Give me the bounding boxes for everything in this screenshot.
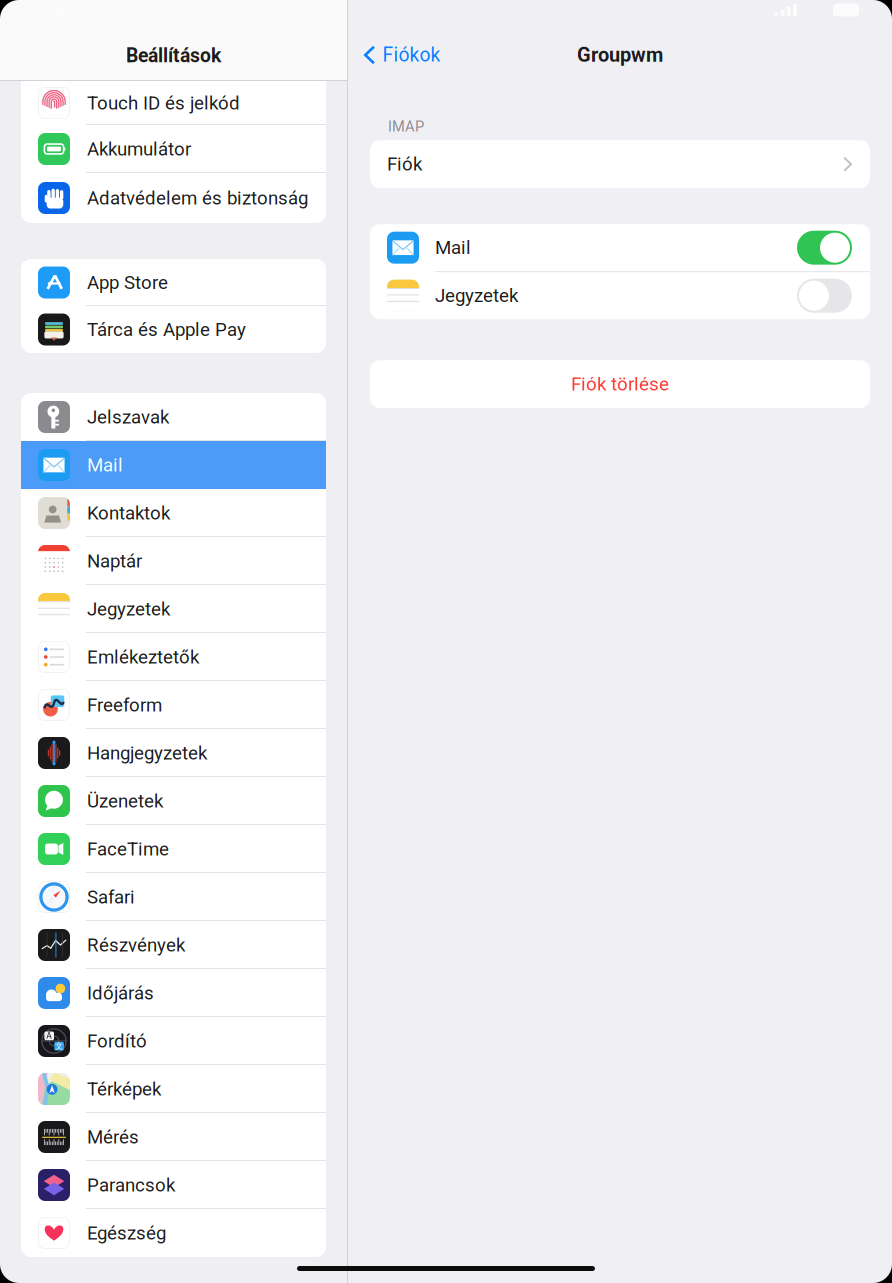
staticText: Jegyzetek — [435, 285, 518, 307]
button[interactable]: Mail — [21, 441, 326, 489]
staticText: Részvények — [87, 934, 185, 956]
staticText: Groupwm — [577, 43, 663, 67]
button[interactable]: Fiók törlése — [370, 360, 870, 408]
staticText: Térképek — [87, 1078, 161, 1100]
staticText: Mail — [435, 237, 471, 259]
button[interactable]: Részvények — [21, 921, 326, 969]
button[interactable]: Mérés — [21, 1113, 326, 1161]
button[interactable]: Parancsok — [21, 1161, 326, 1209]
button[interactable]: Jegyzetek engedélyezése — [797, 279, 852, 313]
button[interactable]: A — [21, 1017, 326, 1065]
button[interactable]: Touch ID és jelkód — [21, 81, 326, 125]
staticText: Adatvédelem és biztonság — [87, 187, 308, 209]
button[interactable]: Egészség — [21, 1209, 326, 1257]
staticText: Emlékeztetők — [87, 646, 199, 668]
button[interactable]: Üzenetek — [21, 777, 326, 825]
staticText: Kontaktok — [87, 502, 170, 524]
button[interactable]: Adatvédelem és biztonság — [21, 173, 326, 223]
staticText: IMAP — [388, 118, 424, 135]
staticText: Mail — [87, 454, 123, 476]
staticText: Időjárás — [87, 982, 154, 1004]
staticText: Akkumulátor — [87, 138, 191, 160]
staticText: Tárca és Apple Pay — [87, 319, 246, 340]
button[interactable]: Fiókok — [348, 34, 440, 76]
button[interactable]: Hangjegyzetek — [21, 729, 326, 777]
staticText: Beállítások — [126, 44, 221, 67]
staticText: Egészség — [87, 1222, 166, 1244]
button[interactable]: Emlékeztetők — [21, 633, 326, 681]
staticText: Freeform — [87, 694, 162, 716]
staticText: Parancsok — [87, 1174, 175, 1196]
button[interactable]: App Store — [21, 259, 326, 306]
button[interactable]: Naptár — [21, 537, 326, 585]
button[interactable]: Freeform — [21, 681, 326, 729]
staticText: Safari — [87, 886, 135, 908]
button[interactable]: Jegyzetek — [21, 585, 326, 633]
button[interactable]: Kontaktok — [21, 489, 326, 537]
staticText: FaceTime — [87, 838, 169, 860]
button[interactable]: Tárca és Apple Pay — [21, 306, 326, 353]
button[interactable]: Térképek — [21, 1065, 326, 1113]
staticText: Hangjegyzetek — [87, 742, 207, 764]
button[interactable]: Mail engedélyezése — [797, 231, 852, 265]
button[interactable]: FaceTime — [21, 825, 326, 873]
staticText: Naptár — [87, 550, 142, 572]
button[interactable]: Jelszavak — [21, 393, 326, 441]
staticText: 文 — [55, 1041, 63, 1051]
staticText: A — [46, 1031, 52, 1041]
staticText: Jelszavak — [87, 406, 169, 428]
button[interactable]: Időjárás — [21, 969, 326, 1017]
staticText: Fiókok — [382, 44, 440, 66]
staticText: Fiók törlése — [571, 373, 669, 395]
staticText: Üzenetek — [87, 790, 163, 812]
button[interactable]: Fiók — [370, 140, 870, 188]
button[interactable]: Safari — [21, 873, 326, 921]
button[interactable]: Akkumulátor — [21, 125, 326, 173]
staticText: App Store — [87, 272, 168, 293]
staticText: Fordító — [87, 1030, 147, 1052]
staticText: Fiók — [387, 153, 422, 175]
staticText: Touch ID és jelkód — [87, 92, 240, 114]
staticText: Jegyzetek — [87, 598, 170, 620]
staticText: Mérés — [87, 1126, 139, 1148]
